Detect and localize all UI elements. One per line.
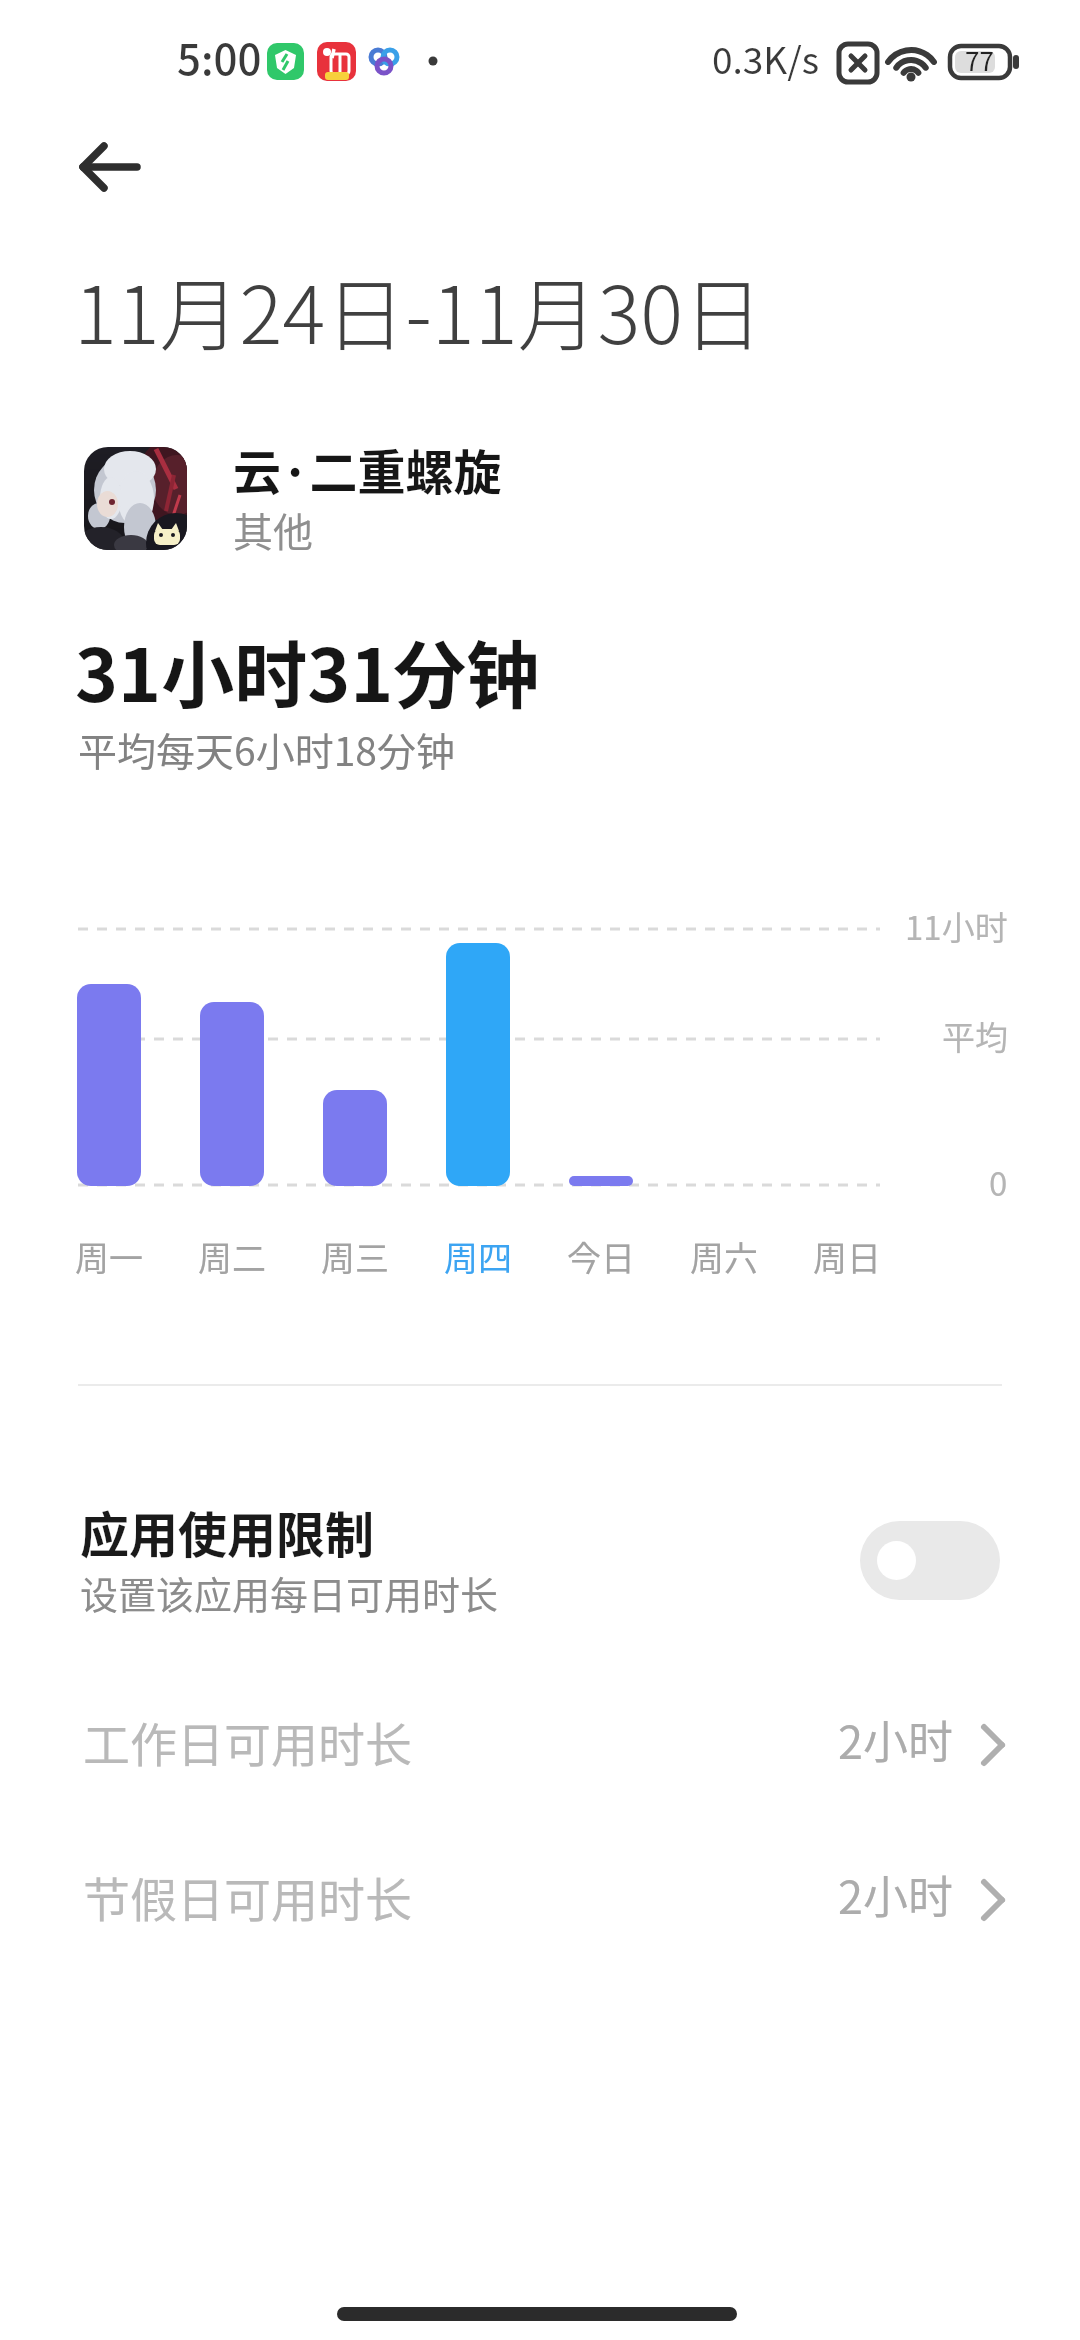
staticText: 设置该应用每日可用时长: [80, 1565, 499, 1620]
staticText: 0: [989, 1158, 1008, 1206]
button[interactable]: [60, 1683, 1020, 1807]
button[interactable]: [58, 126, 158, 208]
staticText: 应用使用限制: [80, 1496, 375, 1567]
staticText: 2小时: [838, 1862, 953, 1927]
staticText: 周六: [690, 1232, 758, 1281]
staticText: 周三: [321, 1232, 389, 1281]
button[interactable]: [60, 426, 1020, 568]
staticText: 77: [965, 41, 994, 79]
staticText: 工作日可用时长: [83, 1707, 412, 1775]
staticText: 周一: [75, 1232, 143, 1281]
staticText: 节假日可用时长: [83, 1862, 412, 1930]
staticText: 周四: [444, 1232, 512, 1281]
staticText: 31小时31分钟: [75, 617, 540, 723]
staticText: 5:00: [177, 26, 262, 87]
staticText: 其他: [233, 501, 313, 559]
staticText: 平均: [942, 1012, 1008, 1060]
staticText: 今日: [567, 1232, 635, 1281]
staticText: 周二: [198, 1232, 266, 1281]
staticText: 11月24日-11月30日: [74, 251, 764, 367]
staticText: 周日: [813, 1232, 881, 1281]
staticText: 2小时: [838, 1707, 953, 1772]
staticText: 云·二重螺旋: [233, 434, 502, 504]
button[interactable]: [860, 1521, 1000, 1600]
button[interactable]: [0, 1490, 1080, 1630]
button[interactable]: [60, 1838, 1020, 1962]
staticText: 0.3K/s: [712, 31, 820, 85]
staticText: 平均每天6小时18分钟: [78, 721, 455, 777]
staticText: 11小时: [905, 902, 1008, 950]
